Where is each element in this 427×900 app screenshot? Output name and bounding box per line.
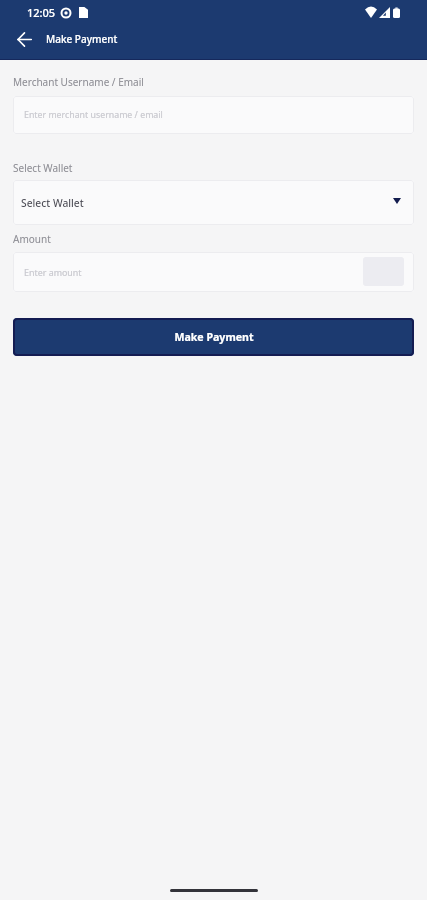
staticText: Amount <box>13 232 51 246</box>
staticText: Merchant Username / Email <box>13 75 144 89</box>
button[interactable]: Make Payment <box>13 318 414 356</box>
button[interactable]: Enter merchant username / email <box>13 96 414 134</box>
button[interactable]: Enter amount <box>13 252 414 292</box>
staticText: 12:05 <box>27 5 56 20</box>
staticText: Select Wallet <box>13 161 73 175</box>
button[interactable]: Select Wallet <box>13 180 414 225</box>
staticText: Enter amount <box>24 266 82 278</box>
staticText: Make Payment <box>46 32 118 46</box>
button[interactable]: Back <box>9 24 39 54</box>
staticText: Enter merchant username / email <box>24 109 163 121</box>
staticText: Select Wallet <box>21 196 84 210</box>
staticText: Make Payment <box>174 330 254 344</box>
